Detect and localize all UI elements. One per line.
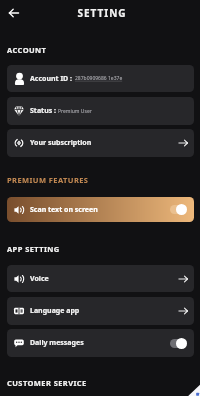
button[interactable]: Language app: [7, 297, 194, 325]
staticText: PREMIUM FEATURES: [7, 175, 89, 185]
staticText: ACCOUNT: [7, 45, 47, 55]
staticText: APP SETTING: [7, 244, 60, 254]
button[interactable]: Back: [4, 3, 23, 22]
button[interactable]: Your subscription: [7, 129, 194, 157]
staticText: Account ID :: [30, 74, 73, 84]
button[interactable]: Account ID :: [7, 65, 194, 92]
staticText: Voice: [30, 274, 49, 284]
button[interactable]: Status :: [7, 97, 194, 125]
staticText: Premium User: [58, 108, 92, 115]
staticText: Your subscription: [30, 138, 92, 148]
staticText: Scan text on screen: [30, 205, 98, 215]
button[interactable]: Scan text on screen: [7, 197, 194, 222]
button[interactable]: Toggle: [169, 338, 187, 349]
staticText: Daily messages: [30, 338, 84, 348]
button[interactable]: Daily messages: [7, 329, 194, 357]
staticText: SETTING: [2, 6, 200, 20]
staticText: Language app: [30, 306, 80, 316]
staticText: CUSTOMER SERVICE: [7, 378, 87, 388]
staticText: Status :: [30, 106, 56, 116]
button[interactable]: Toggle: [169, 204, 187, 215]
button[interactable]: Voice: [7, 265, 194, 292]
staticText: 287b0909686 1e37e: [75, 75, 123, 82]
